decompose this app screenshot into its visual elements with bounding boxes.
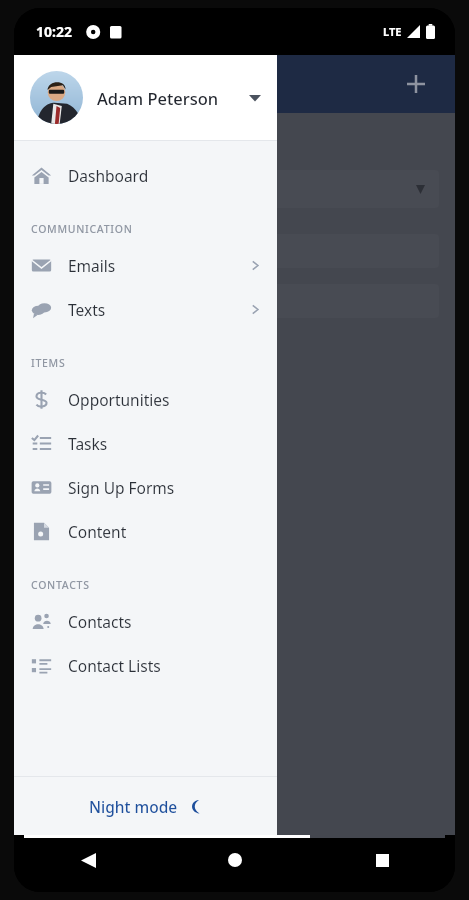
staticText: LTE	[383, 24, 402, 39]
staticText: 10:22	[36, 22, 72, 41]
staticText: CONTACTS	[31, 578, 90, 592]
button[interactable]: Contacts	[14, 599, 277, 643]
staticText: COMMUNICATION	[31, 222, 133, 236]
button[interactable]: Content	[14, 509, 277, 553]
button[interactable]: Add	[399, 67, 433, 101]
button[interactable]: Emails	[14, 243, 277, 287]
button[interactable]: Recents	[360, 838, 404, 882]
staticText: Adam Peterson	[97, 87, 219, 109]
staticText: Sign Up Forms	[68, 477, 175, 498]
staticText: Contact Lists	[68, 655, 161, 676]
button[interactable]: Back	[66, 838, 110, 882]
button[interactable]: Contact Lists	[14, 643, 277, 687]
button[interactable]: Dashboard	[14, 153, 277, 197]
staticText: Opportunities	[68, 389, 170, 410]
staticText: ITEMS	[31, 356, 66, 370]
button[interactable]: Home	[213, 838, 257, 882]
button[interactable]: Texts	[14, 287, 277, 331]
button[interactable]: Tasks	[14, 421, 277, 465]
staticText: Texts	[68, 299, 106, 320]
button[interactable]: Opportunities	[14, 377, 277, 421]
button[interactable]: Night mode	[14, 777, 277, 835]
staticText: Emails	[68, 255, 116, 276]
staticText: Contacts	[68, 611, 132, 632]
staticText: Dashboard	[68, 165, 149, 186]
staticText: Night mode	[89, 796, 178, 817]
staticText: Content	[68, 521, 127, 542]
staticText: Tasks	[68, 433, 108, 454]
button[interactable]: Adam Peterson	[14, 55, 277, 140]
button[interactable]: Sign Up Forms	[14, 465, 277, 509]
staticText: Suite That	[30, 805, 101, 825]
